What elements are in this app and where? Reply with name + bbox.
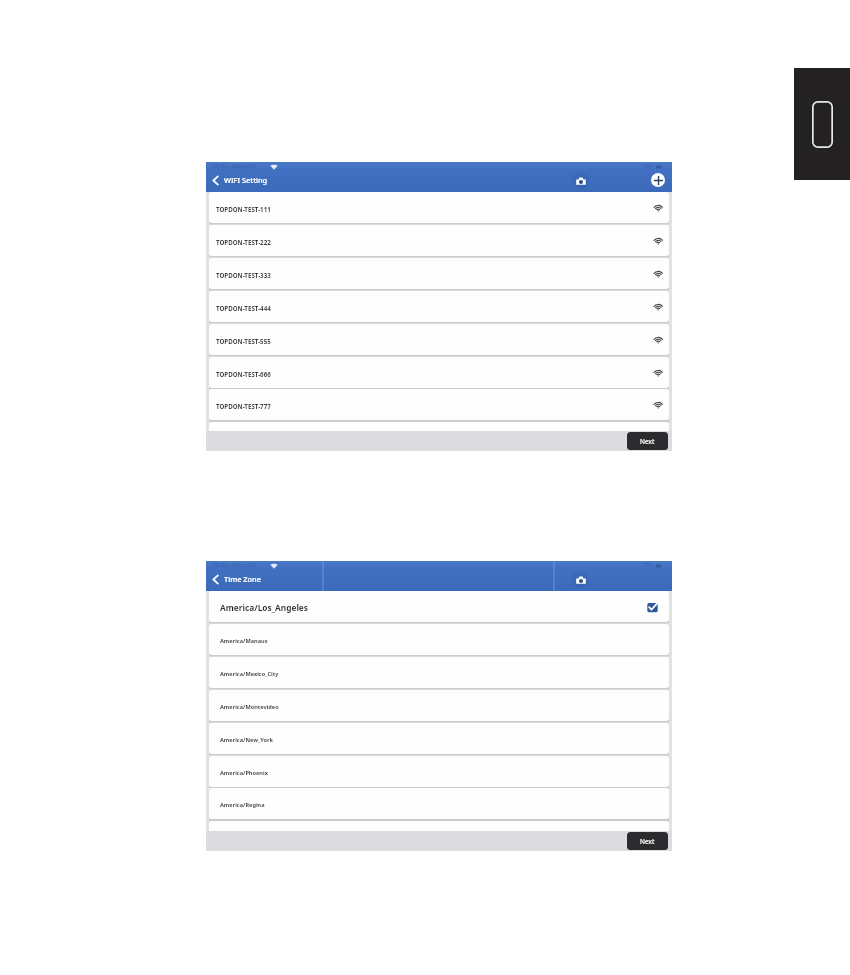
button[interactable]: TOPDON-TEST-666: [209, 357, 669, 388]
staticText: TOPDON-TEST-111: [216, 205, 271, 213]
staticText: America/Regina: [220, 801, 265, 809]
button[interactable]: Next: [627, 432, 668, 450]
button[interactable]: Screenshot: [572, 172, 589, 189]
staticText: 09:29 a. Mon Jul 30: [213, 163, 256, 170]
staticText: WIFI Setting: [224, 175, 268, 185]
staticText: America/Montevideo: [220, 703, 279, 711]
button[interactable]: America/Manaus: [209, 624, 669, 655]
button[interactable]: TOPDON-TEST-777: [209, 389, 669, 420]
staticText: TOPDON-TEST-222: [216, 238, 271, 246]
button[interactable]: America/Los_Angeles: [209, 591, 669, 622]
staticText: America/Mexico_City: [220, 670, 279, 678]
button[interactable]: Screenshot: [572, 571, 589, 588]
button[interactable]: America/Montevideo: [209, 690, 669, 721]
staticText: TOPDON-TEST-444: [216, 304, 271, 312]
button[interactable]: TOPDON-TEST-444: [209, 291, 669, 322]
button[interactable]: TOPDON-TEST-111: [209, 192, 669, 223]
button[interactable]: America/Phoenix: [209, 756, 669, 787]
button[interactable]: TOPDON-TEST-555: [209, 324, 669, 355]
button[interactable]: America/Regina: [209, 788, 669, 819]
staticText: 09:29 a. Mon Jul 30: [213, 562, 256, 569]
staticText: America/Manaus: [220, 637, 268, 645]
staticText: TOPDON-TEST-333: [216, 271, 271, 279]
staticText: America/New_York: [220, 736, 273, 744]
button[interactable]: TOPDON-TEST-333: [209, 258, 669, 289]
button[interactable]: America/Mexico_City: [209, 657, 669, 688]
staticText: TOPDON-TEST-777: [216, 402, 271, 410]
staticText: Next: [640, 437, 655, 446]
staticText: 77%: [643, 163, 653, 169]
button[interactable]: Back: [206, 171, 225, 190]
button[interactable]: Next: [627, 832, 668, 850]
button[interactable]: Back: [206, 570, 225, 589]
button[interactable]: Menu tab: [794, 68, 850, 180]
staticText: Time Zone: [224, 574, 261, 584]
staticText: Next: [640, 837, 655, 846]
button[interactable]: Add network: [651, 173, 665, 187]
button[interactable]: America/New_York: [209, 723, 669, 754]
staticText: TOPDON-TEST-666: [216, 370, 271, 378]
staticText: TOPDON-TEST-555: [216, 337, 271, 345]
button[interactable]: TOPDON-TEST-222: [209, 225, 669, 256]
staticText: 77%: [643, 562, 653, 568]
staticText: America/Los_Angeles: [220, 602, 308, 613]
staticText: America/Phoenix: [220, 769, 268, 777]
